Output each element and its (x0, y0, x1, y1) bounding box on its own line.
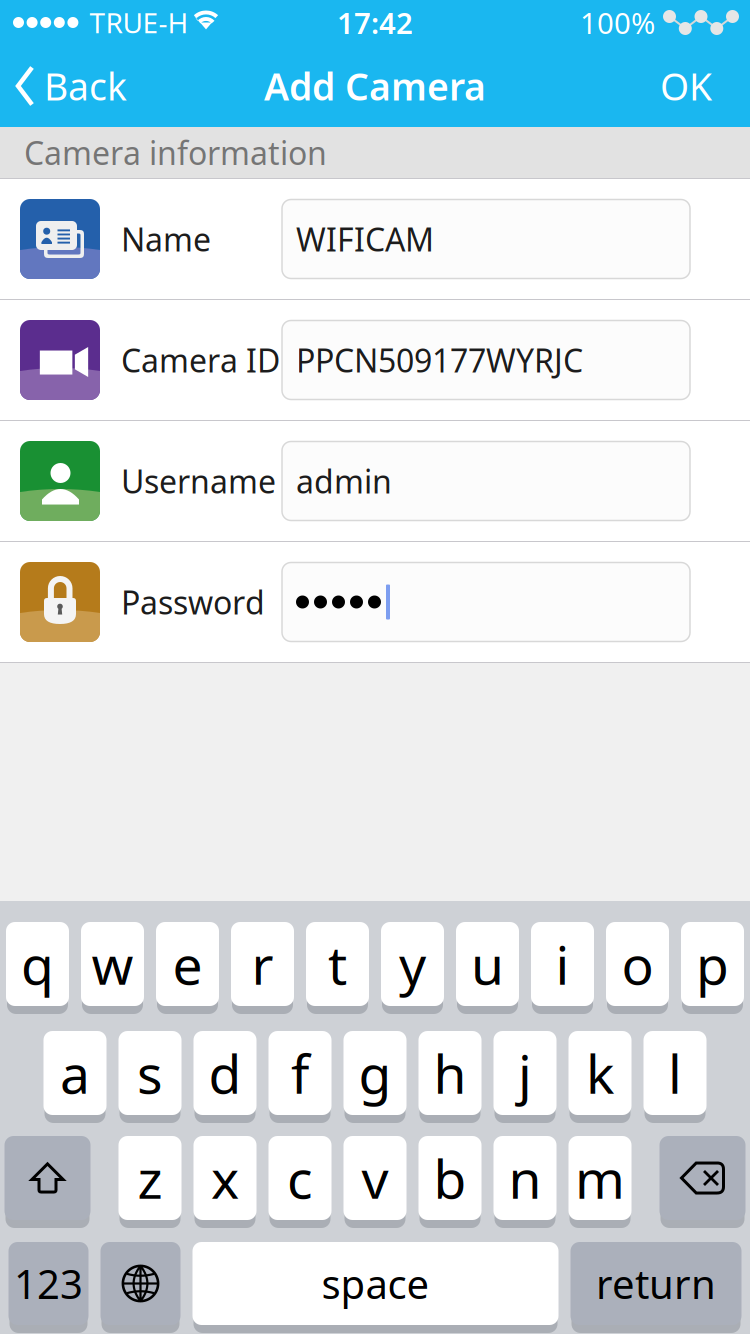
staticText: w (91, 929, 133, 999)
staticText: Add Camera (264, 61, 486, 111)
button[interactable]: z (118, 1139, 181, 1225)
staticText: r (251, 929, 273, 999)
button[interactable]: Name (0, 179, 750, 299)
button[interactable]: x (193, 1139, 256, 1225)
staticText: admin (296, 460, 392, 502)
button[interactable]: w (81, 925, 144, 1011)
staticText: q (21, 929, 54, 999)
button[interactable]: c (268, 1139, 331, 1225)
staticText: f (291, 1038, 309, 1108)
staticText: n (508, 1143, 541, 1213)
staticText: Name (121, 218, 211, 260)
button[interactable]: r (231, 925, 294, 1011)
button[interactable]: y (381, 925, 444, 1011)
button[interactable]: f (268, 1034, 331, 1120)
staticText: v (361, 1143, 388, 1213)
staticText: t (328, 929, 347, 999)
button[interactable]: p (681, 925, 744, 1011)
staticText: x (211, 1143, 239, 1213)
button[interactable] (659, 1139, 745, 1225)
staticText: b (433, 1143, 466, 1213)
staticText: Back (44, 61, 127, 111)
staticText: p (696, 929, 729, 999)
button[interactable]: Back (0, 45, 143, 127)
button[interactable]: u (456, 925, 519, 1011)
staticText: u (471, 929, 504, 999)
button[interactable]: v (343, 1139, 406, 1225)
staticText: space (321, 1257, 429, 1310)
staticText: PPCN509177WYRJC (296, 339, 583, 381)
staticText: l (668, 1038, 682, 1108)
button[interactable]: n (493, 1139, 556, 1225)
staticText: WIFICAM (296, 218, 434, 260)
button[interactable]: t (306, 925, 369, 1011)
button[interactable]: 123 (8, 1245, 88, 1330)
staticText: c (287, 1143, 313, 1213)
staticText: return (596, 1257, 716, 1310)
button[interactable]: Camera ID (0, 300, 750, 420)
staticText: Username (121, 460, 276, 502)
button[interactable]: h (418, 1034, 481, 1120)
button[interactable]: e (156, 925, 219, 1011)
staticText: i (555, 929, 569, 999)
button[interactable]: b (418, 1139, 481, 1225)
button[interactable]: q (6, 925, 69, 1011)
button[interactable] (4, 1139, 90, 1225)
button[interactable]: OK (638, 45, 750, 127)
staticText: z (137, 1143, 162, 1213)
staticText: Password (121, 581, 265, 623)
button[interactable]: a (43, 1034, 106, 1120)
button[interactable]: k (568, 1034, 631, 1120)
staticText: j (518, 1038, 532, 1108)
staticText: Camera information (24, 131, 327, 174)
staticText: k (586, 1038, 614, 1108)
button[interactable]: l (643, 1034, 706, 1120)
button[interactable]: i (531, 925, 594, 1011)
staticText: 100% (580, 3, 655, 42)
button[interactable]: j (493, 1034, 556, 1120)
staticText: d (208, 1038, 241, 1108)
button[interactable]: s (118, 1034, 181, 1120)
staticText: 123 (14, 1257, 83, 1310)
staticText: a (60, 1038, 90, 1108)
button[interactable]: d (193, 1034, 256, 1120)
button[interactable] (100, 1245, 180, 1330)
staticText: s (137, 1038, 163, 1108)
button[interactable]: Password (0, 542, 750, 662)
staticText: g (358, 1038, 391, 1108)
staticText: y (399, 929, 426, 999)
staticText: 17:42 (337, 3, 413, 42)
button[interactable]: return (570, 1245, 741, 1330)
button[interactable]: g (343, 1034, 406, 1120)
staticText: e (172, 929, 202, 999)
staticText: Camera ID (121, 339, 280, 381)
button[interactable]: Username (0, 421, 750, 541)
staticText: h (433, 1038, 466, 1108)
staticText: TRUE-H (89, 4, 188, 41)
staticText: m (575, 1143, 625, 1213)
button[interactable]: o (606, 925, 669, 1011)
button[interactable]: m (568, 1139, 631, 1225)
staticText: o (621, 929, 653, 999)
staticText: OK (660, 61, 712, 111)
button[interactable]: space (192, 1245, 558, 1330)
